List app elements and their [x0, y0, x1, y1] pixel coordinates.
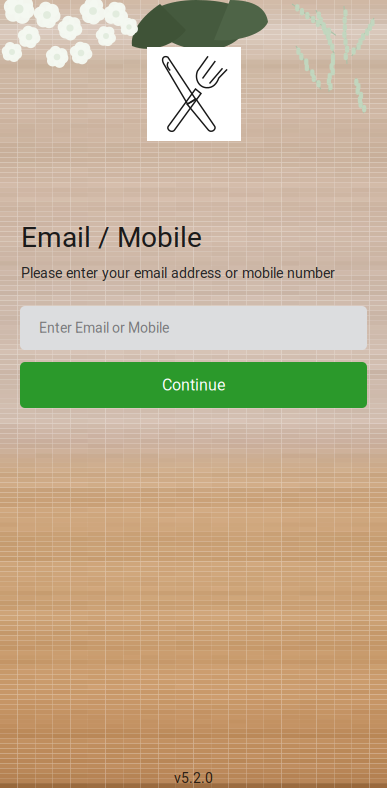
staticText: v5.2.0 — [174, 770, 213, 786]
button[interactable]: Enter Email or Mobile — [20, 306, 367, 350]
staticText: Enter Email or Mobile — [39, 320, 169, 336]
staticText: Continue — [162, 376, 225, 394]
staticText: Please enter your email address or mobil… — [21, 265, 335, 282]
staticText: Email / Mobile — [21, 221, 202, 254]
button[interactable]: Continue — [20, 362, 367, 408]
